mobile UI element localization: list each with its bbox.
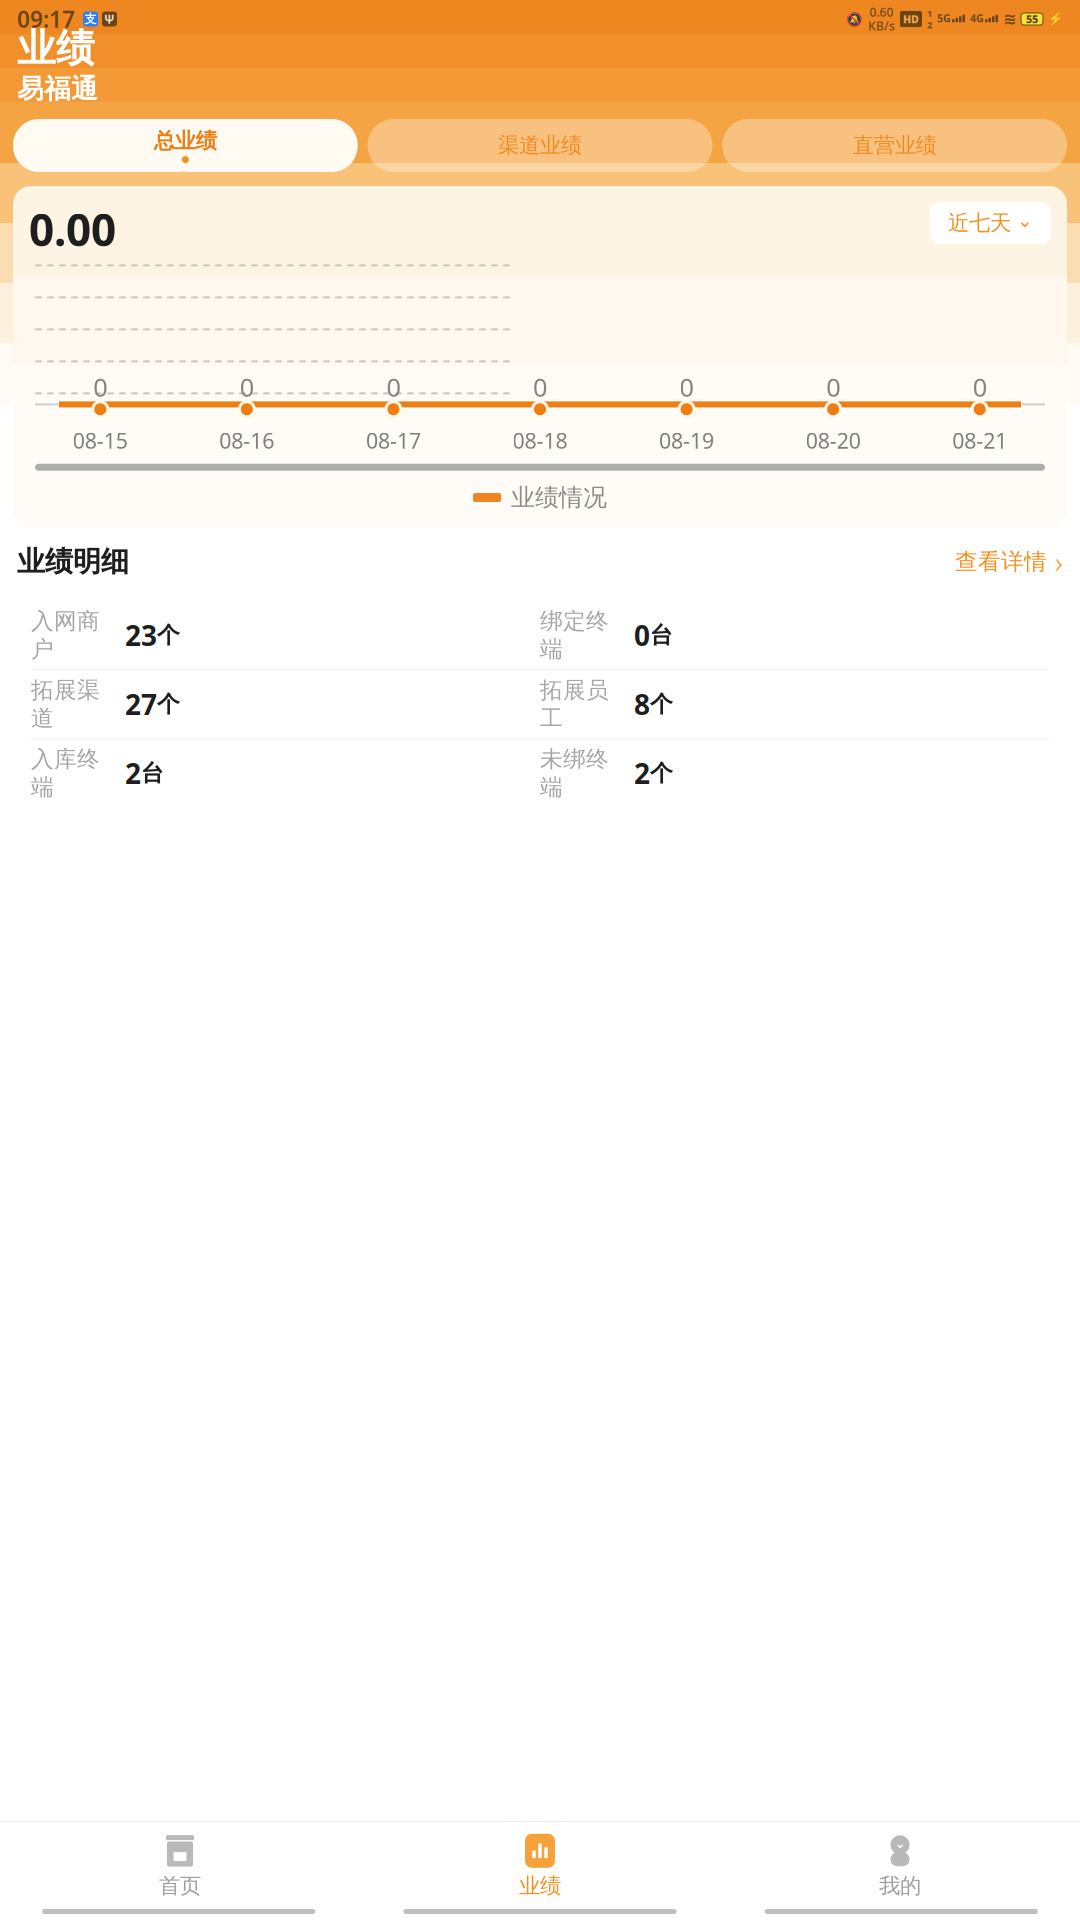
staticText: 个 [650, 759, 673, 787]
staticText: 总业绩 [154, 128, 217, 154]
staticText: 2 [634, 755, 650, 792]
button[interactable]: 渠道业绩 [368, 119, 712, 172]
staticText: 未绑终端 [540, 745, 609, 801]
staticText: Ψ [104, 11, 115, 27]
staticText: 4G [970, 11, 984, 25]
staticText: 渠道业绩 [498, 132, 582, 159]
button[interactable]: 查看详情 [955, 542, 1063, 581]
staticText: 08-21 [952, 426, 1007, 455]
staticText: 易福通 [17, 72, 98, 105]
staticText: 业绩 [519, 1873, 561, 1899]
staticText: 08-16 [219, 426, 274, 455]
staticText: 0.00 [29, 200, 116, 258]
staticText: 55 [1026, 12, 1038, 26]
button[interactable]: 首页 [0, 1830, 360, 1903]
button[interactable]: 近七天 [930, 202, 1051, 244]
staticText: 0 [634, 617, 650, 654]
staticText: 0 [93, 370, 107, 404]
staticText: 0 [386, 370, 400, 404]
staticText: 近七天 [948, 210, 1011, 236]
staticText: ⌄ [1017, 210, 1033, 231]
staticText: 0 [680, 370, 694, 404]
button[interactable]: 易福通 [17, 72, 98, 114]
staticText: 08-15 [73, 426, 128, 455]
staticText: 支 [84, 12, 96, 26]
staticText: 业绩情况 [511, 483, 607, 512]
staticText: 0 [826, 370, 840, 404]
staticText: 08-17 [366, 426, 421, 455]
staticText: 个 [650, 690, 673, 718]
staticText: 入网商户 [31, 607, 100, 663]
staticText: 08-18 [512, 426, 567, 455]
staticText: 拓展员工 [540, 676, 609, 732]
staticText: 拓展渠道 [31, 676, 100, 732]
button[interactable]: 直营业绩 [722, 119, 1067, 172]
staticText: 5G [937, 11, 951, 25]
staticText: 查看详情 [955, 548, 1047, 576]
staticText: 0 [533, 370, 547, 404]
staticText: 个 [157, 690, 180, 718]
staticText: ≋ [1003, 10, 1016, 28]
staticText: 0 [240, 370, 254, 404]
staticText: HD [903, 12, 919, 26]
staticText: 1 [927, 7, 932, 19]
staticText: 08-19 [659, 426, 714, 455]
staticText: 直营业绩 [853, 132, 937, 159]
staticText: 首页 [159, 1873, 201, 1899]
staticText: ⚡ [1048, 12, 1063, 26]
staticText: 0.60 [869, 4, 893, 20]
staticText: 🔕 [846, 11, 863, 27]
staticText: 我的 [879, 1873, 921, 1899]
staticText: ⌄ [894, 1836, 905, 1851]
staticText: 业绩明细 [17, 544, 129, 579]
staticText: 2 [125, 755, 141, 792]
button[interactable]: 总业绩 [13, 119, 358, 172]
staticText: 0 [973, 370, 987, 404]
button[interactable]: ⌄ [720, 1830, 1080, 1903]
staticText: 2 [927, 18, 932, 31]
staticText: 绑定终端 [540, 607, 609, 663]
staticText: 27 [125, 686, 157, 723]
staticText: 台 [141, 759, 164, 787]
staticText: 业绩 [17, 25, 95, 72]
staticText: 个 [157, 621, 180, 649]
staticText: 入库终端 [31, 745, 100, 801]
staticText: KB/s [868, 18, 895, 34]
staticText: 台 [650, 621, 673, 649]
staticText: 8 [634, 686, 650, 723]
button[interactable]: 业绩 [360, 1830, 720, 1903]
staticText: › [1055, 542, 1063, 581]
staticText: 08-20 [806, 426, 861, 455]
staticText: 23 [125, 617, 157, 654]
staticText: 09:17 [17, 4, 75, 34]
